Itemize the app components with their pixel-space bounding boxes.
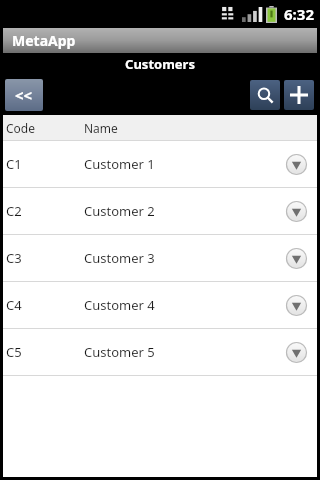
- button[interactable]: C3: [3, 235, 317, 281]
- button[interactable]: <<: [5, 79, 43, 111]
- button[interactable]: Search: [250, 80, 280, 110]
- staticText: Customer 3: [84, 249, 286, 267]
- staticText: 6:32: [284, 4, 314, 24]
- staticText: C2: [6, 202, 84, 220]
- staticText: C3: [6, 249, 84, 267]
- staticText: Customers: [125, 55, 195, 73]
- staticText: Code: [6, 120, 84, 136]
- button[interactable]: Show options: [286, 201, 307, 222]
- staticText: Customer 5: [84, 343, 286, 361]
- staticText: Name: [84, 120, 118, 136]
- button[interactable]: C1: [3, 141, 317, 187]
- button[interactable]: C2: [3, 188, 317, 234]
- staticText: Customer 1: [84, 155, 286, 173]
- button[interactable]: Show options: [286, 154, 307, 175]
- staticText: C1: [6, 155, 84, 173]
- staticText: C5: [6, 343, 84, 361]
- button[interactable]: C4: [3, 282, 317, 328]
- staticText: Customer 2: [84, 202, 286, 220]
- button[interactable]: Show options: [286, 248, 307, 269]
- button[interactable]: Show options: [286, 342, 307, 363]
- button[interactable]: Show options: [286, 295, 307, 316]
- staticText: MetaApp: [12, 31, 76, 50]
- button[interactable]: C5: [3, 329, 317, 375]
- staticText: <<: [15, 85, 33, 105]
- staticText: C4: [6, 296, 84, 314]
- button[interactable]: Add: [284, 80, 314, 110]
- staticText: Customer 4: [84, 296, 286, 314]
